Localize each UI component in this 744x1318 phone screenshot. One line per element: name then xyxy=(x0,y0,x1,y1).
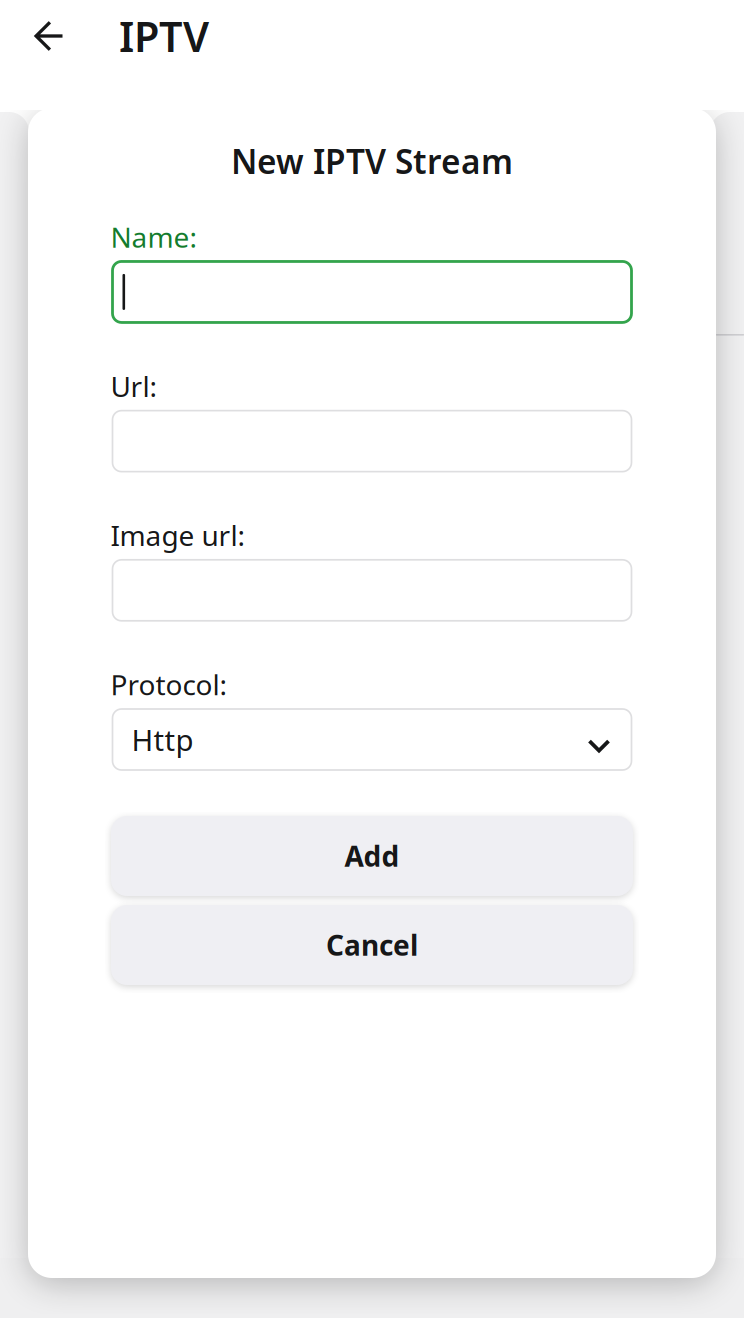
button[interactable]: Protocol: xyxy=(112,709,631,770)
button[interactable]: Add xyxy=(111,816,633,896)
staticText: New IPTV Stream xyxy=(231,139,513,183)
button[interactable]: Image url: xyxy=(112,560,631,621)
button[interactable]: Cancel xyxy=(111,905,633,985)
staticText: Image url: xyxy=(110,517,245,554)
staticText: Url: xyxy=(110,367,157,405)
button[interactable]: Name: xyxy=(112,261,631,322)
staticText: IPTV xyxy=(119,9,209,63)
staticText: Cancel xyxy=(326,926,418,964)
button[interactable]: Url: xyxy=(112,411,631,472)
staticText: Protocol: xyxy=(110,666,227,703)
staticText: Http xyxy=(131,720,193,759)
button[interactable]: Back xyxy=(15,2,83,70)
staticText: Add xyxy=(344,837,399,875)
staticText: Name: xyxy=(110,218,197,255)
